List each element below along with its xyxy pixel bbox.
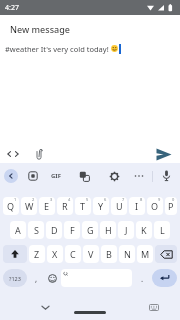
- button[interactable]: [35, 148, 43, 161]
- staticText: H: [105, 224, 112, 236]
- button[interactable]: [152, 269, 177, 287]
- button[interactable]: ,: [29, 269, 43, 287]
- button[interactable]: M: [137, 245, 153, 263]
- staticText: Q: [7, 200, 15, 212]
- button[interactable]: Q: [3, 197, 19, 215]
- staticText: L: [160, 224, 165, 236]
- staticText: O: [151, 200, 159, 212]
- button[interactable]: P: [165, 197, 177, 215]
- button[interactable]: V: [83, 245, 99, 263]
- button[interactable]: B: [101, 245, 117, 263]
- staticText: 9: [158, 197, 161, 202]
- staticText: 1: [14, 197, 17, 202]
- staticText: 3: [50, 197, 53, 202]
- staticText: N: [124, 248, 131, 260]
- staticText: 4: [68, 197, 71, 202]
- staticText: 7: [122, 197, 125, 202]
- staticText: Y: [98, 200, 104, 212]
- staticText: S: [34, 224, 39, 236]
- button[interactable]: G: [82, 221, 98, 239]
- staticText: D: [51, 224, 58, 236]
- button[interactable]: A: [10, 221, 26, 239]
- button[interactable]: New message: [0, 15, 180, 42]
- staticText: 5: [86, 197, 89, 202]
- button[interactable]: W: [21, 197, 37, 215]
- staticText: .: [141, 273, 144, 284]
- staticText: T: [80, 200, 86, 212]
- staticText: 2: [32, 197, 35, 202]
- button[interactable]: [61, 269, 132, 287]
- button[interactable]: C: [65, 245, 81, 263]
- button[interactable]: E: [39, 197, 55, 215]
- staticText: 4:27: [5, 3, 19, 13]
- staticText: V: [88, 248, 94, 260]
- staticText: P: [168, 200, 174, 212]
- button[interactable]: R: [57, 197, 73, 215]
- button[interactable]: ?123: [3, 269, 27, 287]
- button[interactable]: D: [46, 221, 62, 239]
- staticText: E: [44, 200, 50, 212]
- staticText: 8: [140, 197, 143, 202]
- staticText: M: [141, 248, 150, 260]
- staticText: B: [106, 248, 112, 260]
- button[interactable]: [45, 269, 59, 287]
- button[interactable]: .: [134, 269, 150, 287]
- staticText: K: [141, 224, 147, 236]
- button[interactable]: [4, 169, 18, 183]
- button[interactable]: T: [75, 197, 91, 215]
- button[interactable]: [162, 170, 171, 182]
- button[interactable]: S: [28, 221, 44, 239]
- button[interactable]: [149, 304, 159, 312]
- button[interactable]: #weather It's very cold today!: [5, 42, 180, 55]
- button[interactable]: [28, 171, 38, 181]
- staticText: 0: [172, 197, 175, 202]
- button[interactable]: GIF: [51, 172, 61, 180]
- button[interactable]: [79, 171, 90, 182]
- staticText: ?123: [9, 275, 21, 282]
- button[interactable]: [3, 245, 27, 263]
- staticText: New message: [10, 23, 70, 35]
- staticText: 6: [104, 197, 107, 202]
- button[interactable]: U: [111, 197, 127, 215]
- staticText: A: [15, 224, 21, 236]
- button[interactable]: J: [118, 221, 134, 239]
- staticText: W: [25, 200, 34, 212]
- button[interactable]: L: [154, 221, 170, 239]
- staticText: Z: [34, 248, 40, 260]
- staticText: C: [70, 248, 76, 260]
- button[interactable]: X: [47, 245, 63, 263]
- button[interactable]: K: [136, 221, 152, 239]
- button[interactable]: [109, 171, 120, 182]
- button[interactable]: [41, 305, 50, 311]
- button[interactable]: Z: [29, 245, 45, 263]
- staticText: U: [116, 200, 123, 212]
- staticText: R: [62, 200, 68, 212]
- button[interactable]: H: [100, 221, 116, 239]
- staticText: G: [87, 224, 94, 236]
- button[interactable]: N: [119, 245, 135, 263]
- button[interactable]: [134, 171, 144, 181]
- staticText: F: [70, 224, 75, 236]
- staticText: X: [52, 248, 58, 260]
- staticText: GIF: [51, 172, 61, 180]
- staticText: ,: [35, 273, 38, 284]
- staticText: #weather It's very cold today!: [5, 44, 111, 54]
- button[interactable]: [156, 148, 172, 161]
- button[interactable]: I: [129, 197, 145, 215]
- button[interactable]: Y: [93, 197, 109, 215]
- button[interactable]: [155, 245, 177, 263]
- button[interactable]: F: [64, 221, 80, 239]
- button[interactable]: O: [147, 197, 163, 215]
- staticText: J: [125, 224, 128, 236]
- staticText: I: [135, 200, 139, 212]
- button[interactable]: [7, 149, 19, 159]
